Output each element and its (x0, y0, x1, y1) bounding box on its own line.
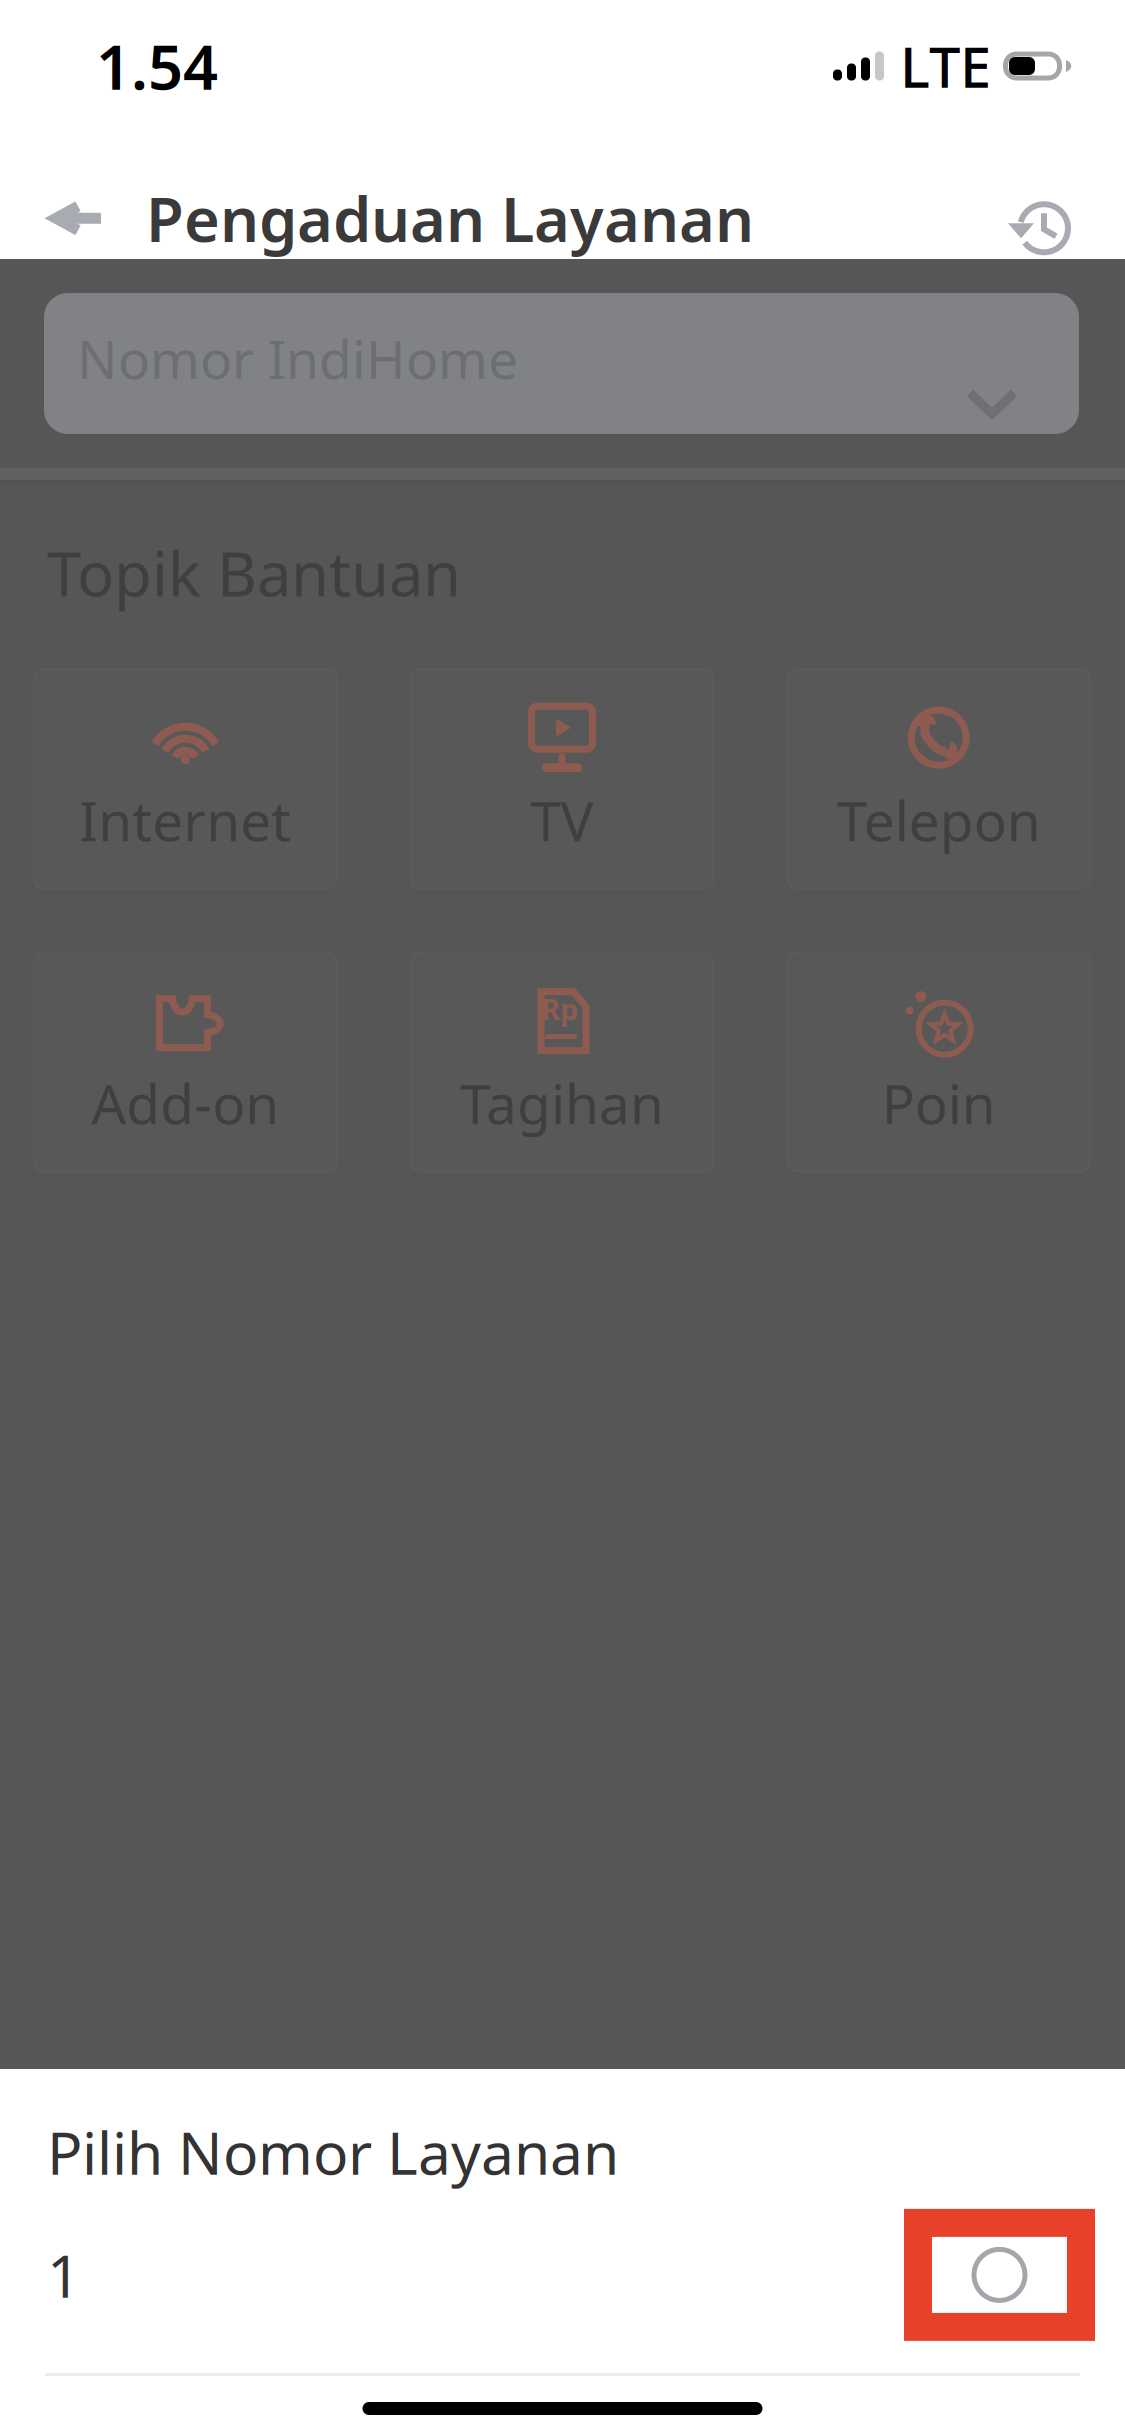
staticText: 1 (47, 2236, 81, 2314)
button[interactable]: Rp (410, 951, 714, 1172)
staticText: 1.54 (96, 25, 218, 107)
button[interactable]: Nomor IndiHome (44, 293, 1079, 434)
staticText: Internet (79, 784, 291, 856)
button[interactable]: Riwayat (1000, 180, 1080, 256)
button[interactable]: Telepon (786, 668, 1091, 889)
staticText: Poin (882, 1067, 996, 1139)
staticText: Pengaduan Layanan (146, 178, 754, 259)
staticText: Rp (541, 989, 579, 1028)
staticText: Topik Bantuan (47, 532, 461, 613)
button[interactable]: Poin (786, 951, 1091, 1172)
staticText: Nomor IndiHome (77, 323, 518, 394)
button[interactable]: 1 (0, 2209, 1125, 2341)
button[interactable]: Internet (33, 668, 338, 889)
staticText: Tagihan (460, 1067, 664, 1139)
button[interactable]: Add-on (33, 951, 338, 1172)
staticText: Pilih Nomor Layanan (47, 2113, 619, 2191)
staticText: Telepon (837, 784, 1041, 856)
button[interactable]: Kembali (42, 180, 114, 256)
staticText: LTE (900, 29, 991, 103)
button[interactable]: TV (410, 668, 714, 889)
staticText: TV (530, 784, 593, 856)
staticText: Add-on (91, 1067, 279, 1139)
